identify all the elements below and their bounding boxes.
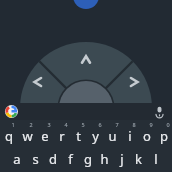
button[interactable]: 6 [87,120,104,146]
button[interactable]: g [79,146,96,172]
staticText: 8 [132,121,136,128]
button[interactable]: j [113,146,130,172]
staticText: i [128,127,132,145]
button[interactable]: s [26,146,44,172]
button[interactable]: 2 [18,120,36,146]
staticText: a [13,150,21,168]
staticText: r [59,127,65,145]
staticText: u [108,127,117,145]
button[interactable]: h [96,146,113,172]
button[interactable]: Google [4,104,19,119]
button[interactable]: d [44,146,62,172]
button[interactable]: a [8,146,26,172]
button[interactable]: Left [20,64,60,108]
button[interactable]: 0 [155,120,172,146]
staticText: j [120,150,124,168]
staticText: 6 [98,121,102,128]
staticText: q [5,127,13,145]
button[interactable]: Right [112,64,152,108]
staticText: y [92,127,99,145]
button[interactable]: 8 [121,120,138,146]
staticText: k [135,150,142,168]
staticText: g [84,150,92,168]
button[interactable]: 1 [0,120,18,146]
staticText: f [68,150,73,168]
staticText: 0 [166,121,170,128]
button[interactable]: Select [59,68,113,108]
button[interactable]: Voice input [152,104,167,119]
staticText: s [32,150,39,168]
button[interactable]: 5 [70,120,87,146]
staticText: e [41,127,49,145]
staticText: 7 [115,121,119,128]
button[interactable]: 7 [104,120,121,146]
staticText: 5 [81,121,85,128]
staticText: w [22,127,33,145]
staticText: 2 [29,121,33,128]
button[interactable]: 9 [138,120,155,146]
staticText: l [154,150,158,168]
staticText: p [160,127,168,145]
button[interactable]: Up [64,14,108,44]
staticText: 9 [149,121,153,128]
button[interactable]: l [147,146,164,172]
button[interactable]: 4 [53,120,70,146]
staticText: t [76,127,81,145]
staticText: h [100,150,109,168]
button[interactable]: f [62,146,79,172]
button[interactable]: 3 [36,120,53,146]
button[interactable]: k [130,146,147,172]
staticText: o [143,127,151,145]
staticText: 4 [64,121,68,128]
staticText: d [49,150,57,168]
staticText: 1 [11,121,15,128]
staticText: 3 [47,121,51,128]
